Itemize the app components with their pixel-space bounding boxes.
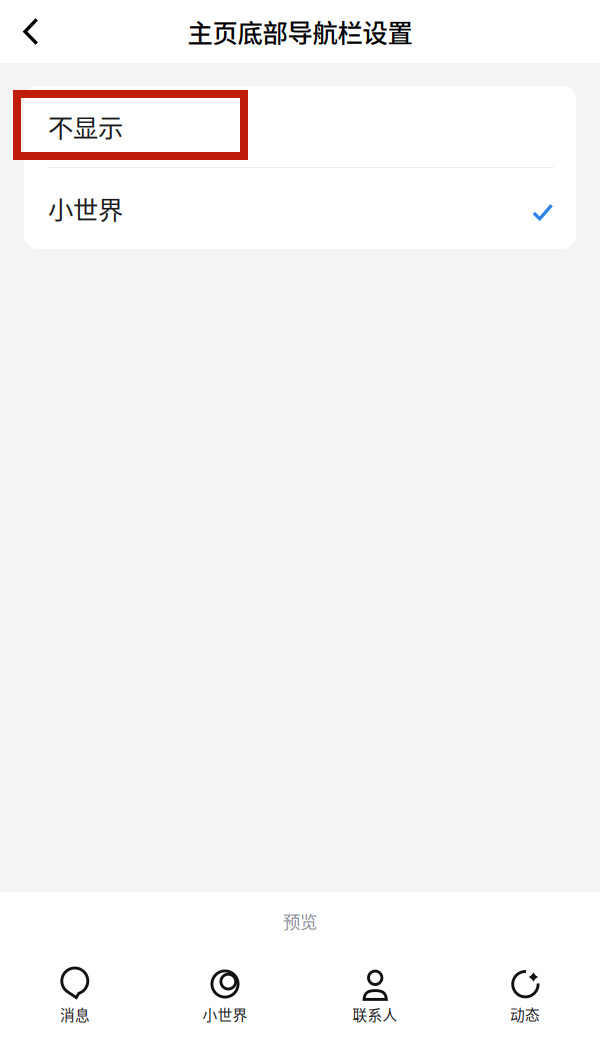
staticText: 小世界 xyxy=(48,190,123,227)
staticText: 主页底部导航栏设置 xyxy=(187,13,412,50)
staticText: 消息 xyxy=(60,1003,90,1025)
button[interactable]: 小世界 xyxy=(150,967,300,1024)
staticText: 小世界 xyxy=(202,1003,247,1025)
button[interactable]: 联系人 xyxy=(300,967,450,1024)
staticText: 动态 xyxy=(510,1003,540,1025)
button[interactable]: 动态 xyxy=(450,967,600,1024)
staticText: 预览 xyxy=(283,908,317,934)
button[interactable]: Back xyxy=(0,0,62,63)
staticText: 联系人 xyxy=(352,1003,397,1025)
button[interactable]: 消息 xyxy=(0,967,150,1024)
button[interactable]: 不显示 xyxy=(24,86,576,167)
staticText: 不显示 xyxy=(48,108,123,145)
button[interactable]: 小世界 xyxy=(24,168,576,249)
